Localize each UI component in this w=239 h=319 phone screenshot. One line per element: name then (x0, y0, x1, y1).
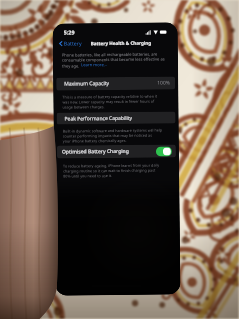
staticText: Peak Performance Capability (64, 115, 133, 122)
staticText: counter performing impacts that may be n… (63, 133, 153, 138)
staticText: Battery Health & Charging (91, 40, 152, 46)
button[interactable]: Peak Performance Capability (56, 111, 176, 125)
staticText: Learn more... (81, 62, 108, 68)
staticText: they age. (62, 63, 81, 69)
button[interactable]: Optimised Battery Charging (57, 144, 176, 159)
staticText: Maximum Capacity (64, 80, 109, 88)
staticText: consumable components that become less e… (62, 56, 165, 63)
staticText: 100% (157, 79, 170, 86)
staticText: Optimised Battery Charging (62, 148, 129, 156)
staticText: To reduce battery ageing, iPhone learns … (63, 162, 160, 168)
button[interactable]: Maximum Capacity (56, 76, 175, 91)
staticText: This is a measure of battery capacity re… (62, 94, 157, 100)
staticText: 80% until you need to use it. (63, 173, 112, 178)
other: Optimised Battery Charging switch (156, 146, 172, 157)
staticText: Built-in dynamic software and hardware s… (63, 127, 163, 133)
staticText: 5:29 (64, 28, 75, 35)
staticText: usage between charges. (62, 104, 105, 110)
staticText: was new. Lower capacity may result in fe… (62, 99, 154, 105)
staticText: charging routine so it can wait to finis… (63, 168, 156, 174)
staticText: Battery (64, 39, 82, 47)
other: Status icons (146, 29, 168, 35)
staticText: your iPhone battery chemically ages. (63, 138, 127, 144)
staticText: Phone batteries, like all rechargeable b… (62, 52, 158, 58)
button[interactable]: Battery (58, 39, 83, 47)
